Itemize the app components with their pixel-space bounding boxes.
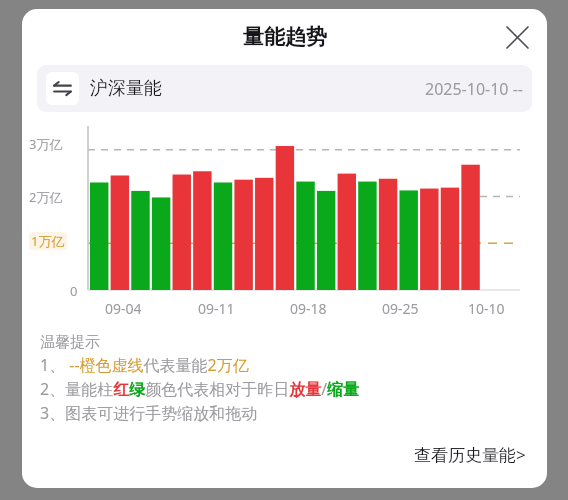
staticText: 2万亿 <box>29 188 63 206</box>
staticText: 3、图表可进行手势缩放和拖动 <box>40 402 258 424</box>
staticText: 0 <box>70 282 78 300</box>
staticText: 09-18 <box>290 299 327 318</box>
staticText: 2025-10-10 -- <box>425 78 523 100</box>
button[interactable]: 查看历史量能> <box>411 440 529 469</box>
staticText: 1万亿 <box>31 232 65 250</box>
staticText: 1、 --橙色虚线代表量能2万亿 <box>40 354 249 376</box>
button[interactable]: 沪深量能 <box>37 65 532 112</box>
staticText: 2、量能柱红绿颜色代表相对于昨日放量/缩量 <box>40 378 360 400</box>
staticText: 10-10 <box>468 299 505 318</box>
staticText: 量能趋势 <box>243 24 327 50</box>
staticText: 09-04 <box>105 299 142 318</box>
staticText: 3万亿 <box>29 135 63 153</box>
staticText: 查看历史量能> <box>414 443 526 466</box>
staticText: 温馨提示 <box>40 333 100 352</box>
button[interactable]: Close <box>501 21 533 53</box>
staticText: 沪深量能 <box>90 77 162 100</box>
staticText: 09-25 <box>382 299 419 318</box>
staticText: 09-11 <box>198 299 235 318</box>
